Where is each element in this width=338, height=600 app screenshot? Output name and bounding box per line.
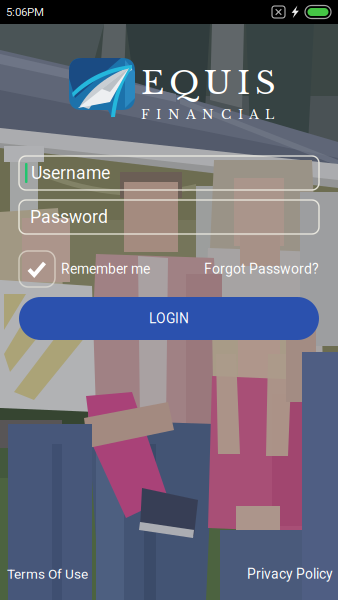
staticText: Password [30,207,108,227]
staticText: Username [31,163,110,183]
button[interactable]: Privacy Policy [247,566,333,582]
button[interactable]: Terms Of Use [7,566,88,582]
staticText: Terms Of Use [7,566,88,582]
staticText: 5:06PM [6,5,44,19]
button[interactable]: LOGIN [19,297,319,340]
staticText: Remember me [61,261,150,277]
staticText: Privacy Policy [247,566,333,582]
button[interactable]: Forgot Password? [204,261,319,277]
button[interactable]: Remember me [19,251,150,287]
staticText: F I N A N C I A L [141,107,274,123]
staticText: E Q U I S [141,63,276,103]
staticText: LOGIN [149,310,189,327]
staticText: Forgot Password? [204,261,319,277]
